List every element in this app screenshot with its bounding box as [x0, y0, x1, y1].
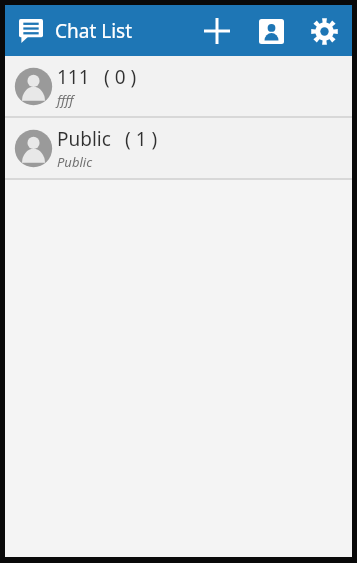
button[interactable]: 111	[5, 56, 352, 116]
staticText: ffff	[57, 91, 74, 109]
staticText: 111	[57, 64, 90, 90]
button[interactable]: Settings	[302, 9, 346, 53]
staticText: Public	[57, 153, 93, 171]
staticText: ( 0 )	[104, 64, 137, 90]
button[interactable]: Contacts	[249, 9, 293, 53]
button[interactable]: New chat	[195, 9, 239, 53]
staticText: Chat List	[55, 18, 133, 44]
button[interactable]: Chats	[16, 16, 46, 46]
staticText: ( 1 )	[125, 126, 158, 152]
button[interactable]: Public	[5, 118, 352, 178]
staticText: Public	[57, 126, 111, 152]
